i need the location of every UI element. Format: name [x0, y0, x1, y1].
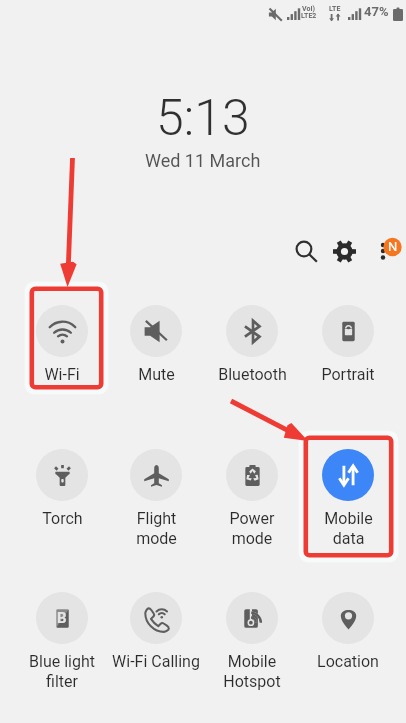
staticText: VoI) — [302, 5, 315, 13]
staticText: 5:13 — [156, 89, 250, 148]
button[interactable]: Mute — [109, 301, 203, 384]
staticText: Power mode — [229, 509, 275, 548]
button[interactable]: Search — [286, 231, 326, 271]
staticText: N — [388, 239, 398, 254]
staticText: Torch — [42, 509, 83, 528]
staticText: Mobile Hotspot — [223, 652, 281, 691]
staticText: 47% — [364, 4, 389, 19]
button[interactable]: B — [15, 588, 109, 691]
staticText: Portrait — [321, 365, 375, 384]
button[interactable]: Portrait — [301, 301, 395, 384]
button[interactable]: Power mode — [205, 445, 299, 548]
button[interactable]: Bluetooth — [205, 301, 299, 384]
staticText: Wed 11 March — [145, 150, 261, 171]
button[interactable]: More options — [372, 229, 406, 263]
staticText: Mobile data — [324, 509, 373, 548]
button[interactable]: Torch — [15, 445, 109, 528]
staticText: LTE2 — [301, 12, 317, 20]
button[interactable]: Wi-Fi — [15, 301, 109, 384]
staticText: Flight mode — [136, 509, 177, 548]
staticText: Wi-Fi — [44, 365, 80, 384]
button[interactable]: Mobile data — [301, 445, 395, 548]
staticText: Location — [317, 652, 379, 671]
button[interactable]: Location — [301, 588, 395, 671]
staticText: Mute — [138, 365, 175, 384]
button[interactable]: Settings — [324, 231, 364, 271]
button[interactable]: Flight mode — [109, 445, 203, 548]
staticText: B — [57, 609, 67, 627]
staticText: Wi-Fi Calling — [112, 652, 200, 671]
staticText: Bluetooth — [218, 365, 287, 384]
staticText: Blue light filter — [29, 652, 95, 691]
button[interactable]: Wi-Fi Calling — [109, 588, 203, 671]
button[interactable]: Mobile Hotspot — [205, 588, 299, 691]
staticText: LTE — [329, 5, 341, 13]
